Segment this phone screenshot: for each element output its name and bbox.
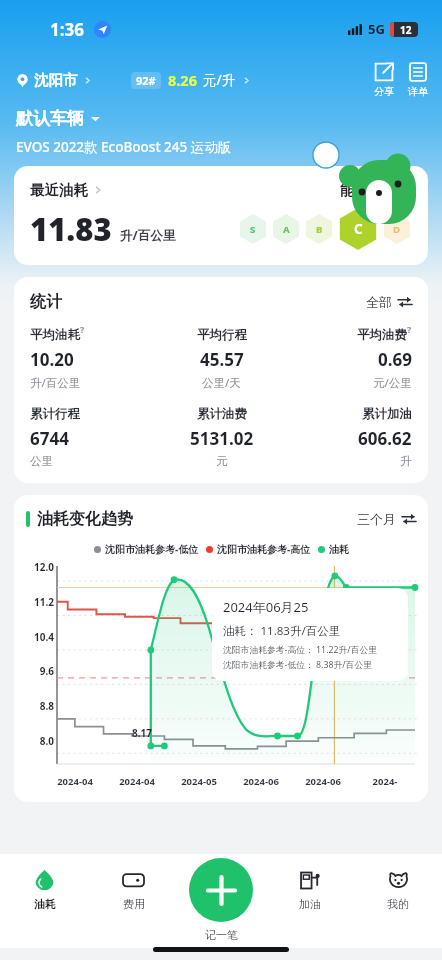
button[interactable]: 92# [131, 70, 250, 90]
staticText: 606.62 [358, 427, 412, 450]
staticText: 元/公里 [373, 375, 412, 391]
staticText: 沈阳市油耗参考-高位 [217, 542, 311, 556]
staticText: 统计 [30, 292, 62, 312]
button[interactable]: 记一笔 [189, 858, 253, 922]
staticText: 8.8 [26, 699, 54, 713]
staticText: 升/百公里 [120, 227, 176, 244]
staticText: 升/百公里 [30, 375, 81, 391]
staticText: ? [80, 323, 85, 335]
staticText: 平均行程 [197, 327, 247, 343]
staticText: 12 [400, 23, 412, 37]
staticText: 2024-06 [230, 775, 292, 788]
staticText: 能耗评级 [340, 181, 398, 199]
staticText: 元/升 [203, 71, 236, 89]
staticText: 油耗： 11.83升/百公里 [223, 623, 341, 639]
staticText: 累计行程 [30, 406, 80, 422]
staticText: EVOS 2022款 EcoBoost 245 运动版 [16, 138, 232, 156]
staticText: 2024- [354, 775, 416, 788]
staticText: 平均油耗 [30, 327, 80, 343]
staticText: 5131.02 [190, 427, 254, 450]
staticText: 记一笔 [205, 928, 238, 942]
button[interactable]: 加油 [266, 854, 354, 926]
button[interactable]: 默认车辆 [16, 108, 100, 129]
staticText: 油耗变化趋势 [37, 509, 133, 529]
staticText: ? [407, 323, 412, 335]
staticText: 2024年06月25 [223, 598, 309, 616]
staticText: 沈阳市 [34, 71, 78, 89]
staticText: 升 [400, 454, 412, 468]
button[interactable]: 沈阳市 [16, 71, 91, 89]
button[interactable]: 三个月 [357, 511, 416, 527]
staticText: 累计加油 [362, 406, 412, 422]
staticText: S [250, 223, 256, 236]
staticText: 11.83 [30, 208, 112, 250]
staticText: D [393, 223, 401, 236]
staticText: A [283, 223, 290, 236]
staticText: 最近油耗 [30, 181, 88, 199]
button[interactable]: 最近油耗 [14, 166, 428, 265]
staticText: 8.17 [132, 726, 152, 740]
button[interactable]: 全部 [366, 294, 412, 310]
staticText: 公里/天 [202, 375, 241, 391]
staticText: 沈阳市油耗参考-低位 [105, 542, 199, 556]
staticText: 11.2 [26, 595, 54, 609]
staticText: 92# [136, 73, 156, 88]
button[interactable]: 费用 [89, 854, 178, 926]
staticText: 10.4 [26, 630, 54, 644]
staticText: B [316, 223, 323, 236]
staticText: 油耗 [329, 543, 349, 556]
staticText: 10.20 [30, 348, 74, 371]
staticText: 8.26 [168, 70, 197, 90]
staticText: 2024-05 [168, 775, 230, 788]
staticText: 2024-04 [106, 775, 168, 788]
staticText: 费用 [123, 897, 145, 911]
staticText: 默认车辆 [16, 108, 84, 129]
staticText: 平均油费 [357, 327, 407, 343]
staticText: 累计油费 [197, 406, 247, 422]
button[interactable]: 详单 [408, 62, 428, 98]
staticText: 12.0 [26, 560, 54, 574]
button[interactable]: 分享 [374, 62, 394, 98]
staticText: 沈阳市油耗参考-高位： 11.22升/百公里 [223, 644, 378, 656]
staticText: 45.57 [200, 348, 244, 371]
staticText: 沈阳市油耗参考-低位： 8.38升/百公里 [223, 659, 373, 671]
staticText: 9.6 [26, 664, 54, 678]
staticText: 我的 [387, 897, 409, 911]
button[interactable]: 油耗 [0, 854, 89, 926]
staticText: 三个月 [357, 511, 396, 527]
staticText: C [354, 220, 363, 238]
staticText: 2024-04 [44, 775, 106, 788]
button[interactable]: 我的 [354, 854, 442, 926]
staticText: 油耗 [34, 897, 56, 911]
staticText: 全部 [366, 294, 392, 310]
staticText: 5G [368, 20, 385, 38]
staticText: 0.69 [378, 348, 412, 371]
staticText: 6744 [30, 427, 69, 450]
staticText: 分享 [374, 85, 394, 98]
staticText: 元 [216, 454, 228, 468]
staticText: 1:36 [50, 18, 84, 41]
staticText: 8.0 [26, 734, 54, 748]
staticText: 公里 [30, 454, 53, 468]
staticText: 2024-06 [292, 775, 354, 788]
staticText: 加油 [299, 897, 321, 911]
staticText: 详单 [408, 85, 428, 98]
